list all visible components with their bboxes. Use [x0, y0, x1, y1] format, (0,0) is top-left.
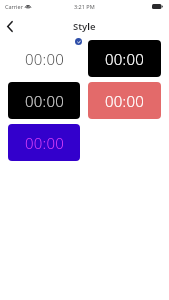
staticText: 00:00 [25, 91, 64, 111]
staticText: 00:00 [25, 133, 64, 153]
button[interactable]: 00:00 [8, 82, 80, 119]
staticText: 00:00 [25, 49, 64, 69]
button[interactable]: 00:00 [88, 82, 161, 119]
staticText: 00:00 [105, 49, 144, 69]
staticText: 3:21 PM [74, 3, 95, 10]
button[interactable]: Back [0, 16, 20, 36]
button[interactable]: 00:00 [88, 40, 161, 77]
staticText: Carrier [5, 3, 23, 10]
button[interactable]: 00:00 [8, 40, 80, 77]
other: Selected [75, 38, 82, 45]
button[interactable]: 00:00 [8, 124, 80, 161]
staticText: 00:00 [105, 91, 144, 111]
staticText: Style [73, 20, 96, 33]
